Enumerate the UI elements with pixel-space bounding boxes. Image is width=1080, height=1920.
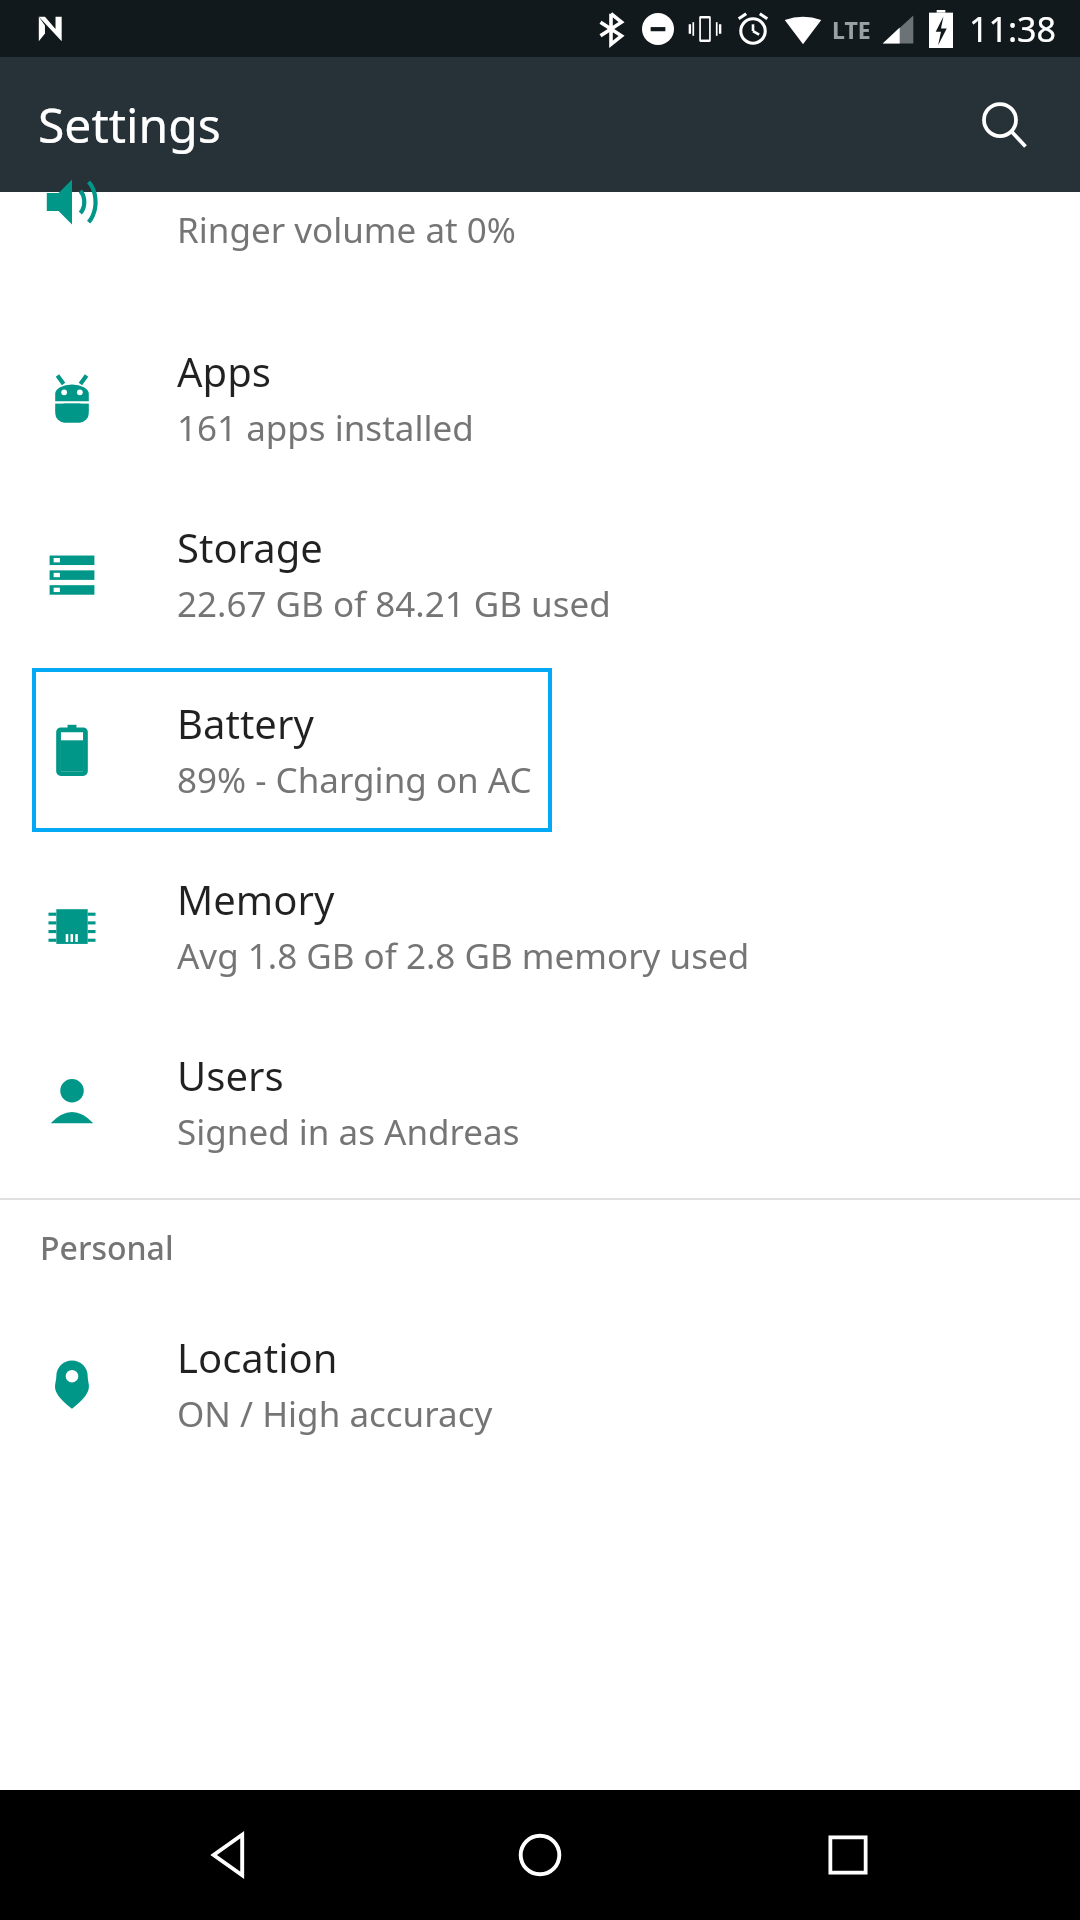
staticText: Signed in as Andreas bbox=[177, 1108, 520, 1156]
button[interactable]: Memory bbox=[0, 838, 1080, 1014]
staticText: 22.67 GB of 84.21 GB used bbox=[177, 580, 611, 628]
button[interactable]: Back bbox=[158, 1790, 308, 1920]
staticText: LTE bbox=[832, 14, 871, 45]
staticText: Memory bbox=[177, 872, 335, 926]
button[interactable]: Location bbox=[0, 1296, 1080, 1472]
button[interactable]: Users bbox=[0, 1014, 1080, 1190]
staticText: 161 apps installed bbox=[177, 404, 474, 452]
staticText: Ringer volume at 0% bbox=[177, 206, 516, 254]
staticText: Battery bbox=[177, 696, 314, 750]
staticText: ON / High accuracy bbox=[177, 1390, 493, 1438]
staticText: Location bbox=[177, 1330, 338, 1384]
button[interactable]: Storage bbox=[0, 486, 1080, 662]
staticText: Settings bbox=[38, 92, 221, 157]
staticText: Storage bbox=[177, 520, 323, 574]
button[interactable]: Apps bbox=[0, 310, 1080, 486]
button[interactable]: Home bbox=[465, 1790, 615, 1920]
staticText: 11:38 bbox=[969, 6, 1056, 52]
staticText: Apps bbox=[177, 344, 271, 398]
button[interactable]: Ringer volume at 0% bbox=[0, 192, 1080, 310]
staticText: Users bbox=[177, 1048, 284, 1102]
button[interactable]: Recent apps bbox=[773, 1790, 923, 1920]
staticText: Personal bbox=[40, 1226, 174, 1270]
staticText: Avg 1.8 GB of 2.8 GB memory used bbox=[177, 932, 750, 980]
staticText: 89% - Charging on AC bbox=[177, 756, 532, 804]
button[interactable]: Search bbox=[956, 77, 1052, 173]
button[interactable]: Battery bbox=[0, 662, 1080, 838]
